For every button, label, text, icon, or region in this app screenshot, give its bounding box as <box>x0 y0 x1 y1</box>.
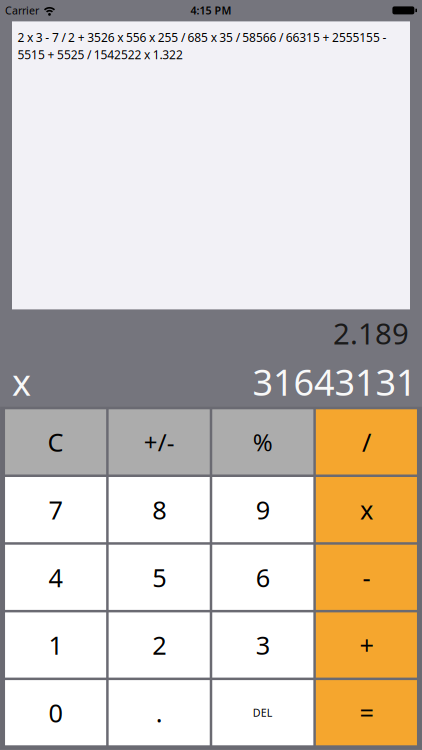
staticText: 7 <box>49 493 63 526</box>
button[interactable]: / <box>316 409 417 474</box>
staticText: +/- <box>144 426 175 458</box>
button[interactable]: 7 <box>5 477 106 542</box>
button[interactable]: = <box>316 680 417 745</box>
staticText: 2 x 3 - 7 / 2 + 3526 x 556 x 255 / 685 x… <box>17 29 386 62</box>
staticText: x <box>360 493 373 526</box>
button[interactable]: 5 <box>109 545 210 610</box>
staticText: 4 <box>49 560 63 594</box>
button[interactable]: C <box>5 409 106 474</box>
button[interactable]: 4 <box>5 545 106 610</box>
staticText: - <box>362 560 370 594</box>
button[interactable]: % <box>212 409 313 474</box>
button[interactable]: 6 <box>212 545 313 610</box>
button[interactable]: + <box>316 612 417 678</box>
staticText: 8 <box>152 493 166 526</box>
staticText: 9 <box>256 493 270 526</box>
button[interactable]: +/- <box>109 409 210 474</box>
button[interactable]: 8 <box>109 477 210 542</box>
staticText: 5 <box>152 560 166 594</box>
staticText: = <box>359 696 373 729</box>
button[interactable]: 1 <box>5 612 106 678</box>
staticText: DEL <box>253 706 273 720</box>
staticText: + <box>359 628 373 662</box>
staticText: 0 <box>49 696 63 729</box>
staticText: % <box>253 426 273 458</box>
staticText: 31643131 <box>252 358 417 406</box>
button[interactable]: - <box>316 545 417 610</box>
button[interactable]: x <box>316 477 417 542</box>
staticText: 2 <box>152 628 166 662</box>
button[interactable]: 3 <box>212 612 313 678</box>
button[interactable]: DEL <box>212 680 313 745</box>
button[interactable]: . <box>109 680 210 745</box>
staticText: 6 <box>256 560 270 594</box>
button[interactable]: 2 <box>109 612 210 678</box>
staticText: 3 <box>256 628 270 662</box>
staticText: / <box>362 425 371 459</box>
staticText: C <box>48 425 64 459</box>
button[interactable]: 0 <box>5 680 106 745</box>
staticText: x <box>12 358 31 406</box>
button[interactable]: 9 <box>212 477 313 542</box>
staticText: . <box>156 696 163 729</box>
staticText: 4:15 PM <box>190 3 231 17</box>
staticText: 2.189 <box>333 314 409 353</box>
staticText: 1 <box>49 628 63 662</box>
staticText: Carrier <box>5 3 39 17</box>
